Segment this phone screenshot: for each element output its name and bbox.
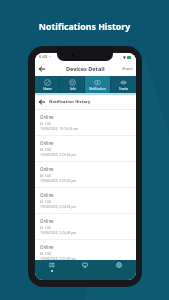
staticText: Notification <box>89 87 106 91</box>
staticText: Online <box>40 140 54 146</box>
button[interactable]: Online <box>35 110 136 135</box>
staticText: Id 144 <box>40 121 51 125</box>
staticText: Tracks <box>119 87 128 91</box>
button[interactable]: Notification <box>85 76 110 93</box>
staticText: Online <box>40 192 54 198</box>
button[interactable]: Settings <box>102 260 136 280</box>
button[interactable]: Online <box>35 162 136 187</box>
button[interactable]: Home <box>35 76 59 93</box>
button[interactable]: Online <box>35 214 136 239</box>
button[interactable]: Devices <box>68 260 102 280</box>
button[interactable]: Online <box>35 188 136 213</box>
staticText: Id 144 <box>40 251 51 255</box>
staticText: Notification History <box>49 99 91 105</box>
staticText: Online <box>40 166 54 172</box>
staticText: Home <box>43 87 52 91</box>
button[interactable]: Share <box>122 66 133 71</box>
staticText: Devices Detail <box>66 65 105 72</box>
staticText: 19/08/2020, 2:26:24 pm <box>40 152 77 156</box>
button[interactable]: Notifications list <box>35 260 68 280</box>
staticText: 6:43 <box>39 54 48 60</box>
button[interactable]: Back <box>37 64 46 73</box>
staticText: Id 144 <box>40 199 51 203</box>
staticText: Info <box>70 87 76 91</box>
button[interactable]: Back <box>37 97 47 107</box>
staticText: Online <box>40 218 54 224</box>
staticText: 19/08/2020, 10:14:14 am <box>40 126 79 130</box>
staticText: 19/08/2020, 2:22:49 pm <box>40 256 77 260</box>
staticText: Id 144 <box>40 173 51 177</box>
button[interactable]: Online <box>35 240 136 260</box>
staticText: Id 144 <box>40 147 51 151</box>
staticText: 19/08/2020, 2:25:22 pm <box>40 178 77 182</box>
staticText: 19/08/2020, 2:24:54 pm <box>40 204 77 208</box>
button[interactable]: Info <box>60 76 84 93</box>
staticText: Online <box>40 114 54 120</box>
staticText: Online <box>40 244 54 250</box>
staticText: Notifications History <box>0 21 169 33</box>
button[interactable]: Tracks <box>111 76 136 93</box>
staticText: 19/08/2020, 2:24:48 pm <box>40 230 77 234</box>
staticText: Id 144 <box>40 225 51 229</box>
button[interactable]: Online <box>35 136 136 161</box>
